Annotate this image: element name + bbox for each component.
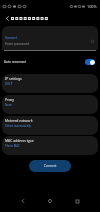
button[interactable]: Home	[41, 192, 59, 210]
staticText: Phone MAC	[5, 144, 20, 148]
staticText: Metered network	[5, 118, 33, 123]
staticText: None	[5, 103, 12, 107]
staticText: IP settings	[5, 76, 22, 81]
staticText: 100%	[87, 4, 97, 9]
button[interactable]: Password	[2, 26, 98, 50]
button[interactable]: MAC address type	[2, 136, 98, 155]
staticText: Connect	[44, 164, 57, 168]
button[interactable]: Back	[14, 192, 32, 210]
staticText: Detect automatically	[5, 124, 31, 128]
button[interactable]: Connect	[29, 160, 71, 172]
button[interactable]: Proxy	[2, 95, 98, 114]
button[interactable]: IP settings	[2, 74, 98, 93]
staticText: Password	[5, 36, 17, 40]
button[interactable]: Show password	[88, 37, 97, 46]
staticText: DHCP	[5, 82, 13, 86]
staticText: Enter password	[5, 41, 30, 45]
button[interactable]: Navigate up	[0, 11, 14, 25]
button[interactable]: Auto reconnect	[0, 54, 100, 70]
staticText: MAC address type	[5, 138, 34, 143]
staticText: Auto reconnect	[4, 60, 85, 64]
button[interactable]: Recent apps	[68, 192, 86, 210]
button[interactable]: Metered network	[2, 116, 98, 135]
staticText: Proxy	[5, 97, 14, 102]
